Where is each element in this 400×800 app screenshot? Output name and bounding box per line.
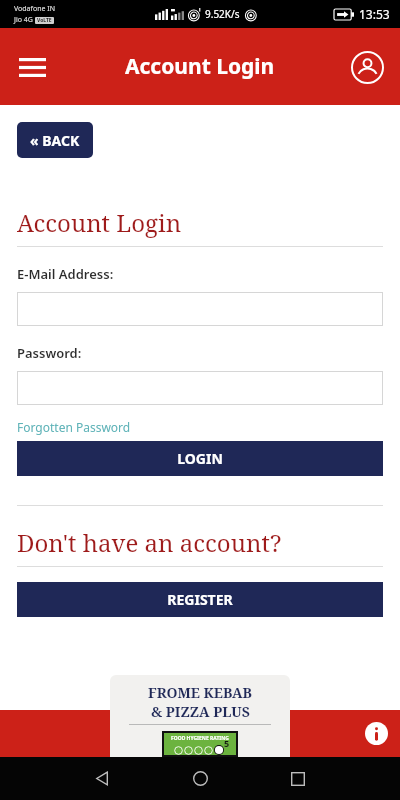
button[interactable]: Back — [78, 757, 126, 800]
staticText: Vodafone IN — [14, 4, 55, 14]
staticText: Don't have an account? — [17, 526, 282, 559]
button[interactable]: « BACK — [17, 122, 93, 158]
staticText: Password: — [17, 344, 82, 362]
button[interactable]: LOGIN — [17, 441, 383, 476]
staticText: 5 — [224, 737, 230, 749]
staticText: REGISTER — [167, 590, 233, 609]
button[interactable] — [17, 371, 383, 405]
button[interactable]: Open navigation menu — [8, 43, 56, 91]
button[interactable]: Home — [176, 757, 224, 800]
staticText: Jio 4G — [14, 15, 33, 25]
button[interactable]: Recent apps — [274, 757, 322, 800]
button[interactable]: Forgotten Password — [17, 419, 131, 435]
staticText: VoLTE — [37, 17, 52, 24]
staticText: LOGIN — [177, 449, 223, 468]
staticText: 13:53 — [359, 6, 390, 22]
staticText: 9.52K/s — [205, 7, 240, 21]
staticText: Account Login — [125, 52, 275, 81]
staticText: Forgotten Password — [17, 419, 131, 435]
button[interactable]: Information — [362, 719, 390, 747]
button[interactable] — [17, 292, 383, 326]
staticText: Account Login — [17, 206, 182, 239]
staticText: FOOD HYGIENE RATING — [171, 735, 229, 742]
staticText: « BACK — [30, 131, 80, 150]
staticText: FROME KEBAB — [148, 683, 253, 702]
staticText: E-Mail Address: — [17, 265, 114, 283]
button[interactable]: REGISTER — [17, 582, 383, 617]
button[interactable]: FROME KEBAB — [110, 675, 290, 757]
staticText: & PIZZA PLUS — [151, 702, 250, 721]
button[interactable]: Account — [344, 44, 390, 90]
